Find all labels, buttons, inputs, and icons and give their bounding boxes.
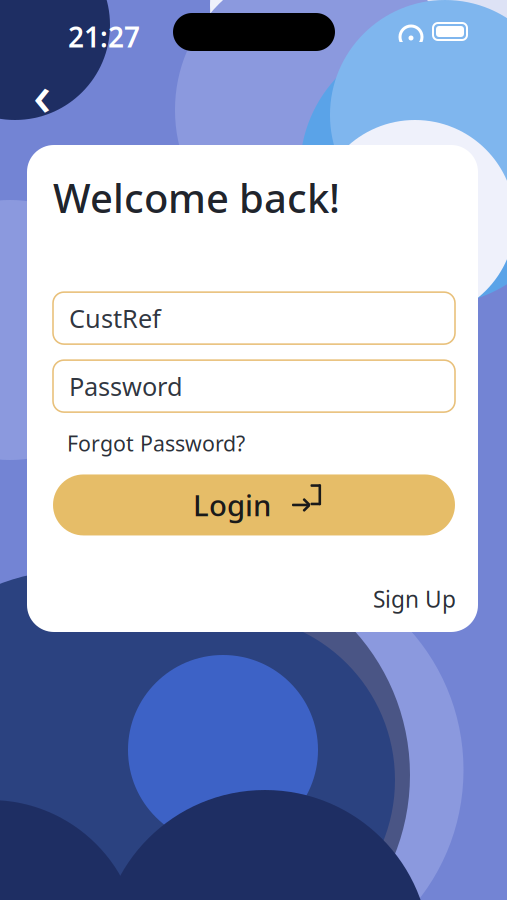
staticText: Login: [193, 485, 271, 524]
button[interactable]: Password: [53, 360, 455, 412]
staticText: Forgot Password?: [67, 429, 245, 457]
button[interactable]: Back: [18, 70, 66, 118]
button[interactable]: Sign Up: [373, 580, 456, 618]
button[interactable]: Login: [53, 474, 455, 535]
staticText: Password: [69, 369, 183, 403]
button[interactable]: CustRef: [53, 292, 455, 344]
staticText: Sign Up: [373, 584, 456, 614]
button[interactable]: Forgot Password?: [67, 426, 245, 460]
staticText: CustRef: [69, 301, 161, 335]
staticText: ‹: [33, 57, 51, 131]
staticText: 21:27: [68, 18, 140, 55]
staticText: Welcome back!: [53, 171, 340, 224]
